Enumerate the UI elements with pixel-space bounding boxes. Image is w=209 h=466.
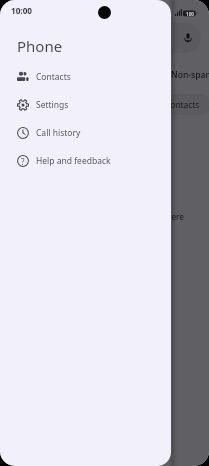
staticText: Phone: [17, 36, 63, 56]
staticText: Help and feedback: [36, 155, 111, 167]
staticText: Call history: [36, 127, 81, 139]
button[interactable]: Search contacts & places: [8, 23, 201, 53]
staticText: Your recent calls will appear here: [57, 211, 184, 222]
other: Voice search: [182, 32, 194, 44]
staticText: Contacts: [36, 71, 71, 83]
staticText: Contacts: [165, 99, 200, 110]
staticText: 10:00: [11, 5, 33, 16]
button[interactable]: Contacts: [154, 94, 209, 115]
staticText: Favourites: [18, 69, 61, 81]
button[interactable]: ?: [0, 147, 171, 175]
button[interactable]: Contacts: [0, 63, 171, 91]
staticText: Non-spam: [171, 69, 209, 81]
staticText: ?: [21, 156, 25, 167]
staticText: Settings: [36, 99, 69, 111]
button[interactable]: [0, 0, 209, 466]
staticText: Missed calls: [19, 99, 66, 110]
button[interactable]: Settings: [0, 91, 171, 119]
button[interactable]: Missed calls: [8, 94, 77, 115]
other: Search: [18, 32, 31, 45]
button[interactable]: Call history: [0, 119, 171, 147]
staticText: 100: [186, 11, 194, 17]
